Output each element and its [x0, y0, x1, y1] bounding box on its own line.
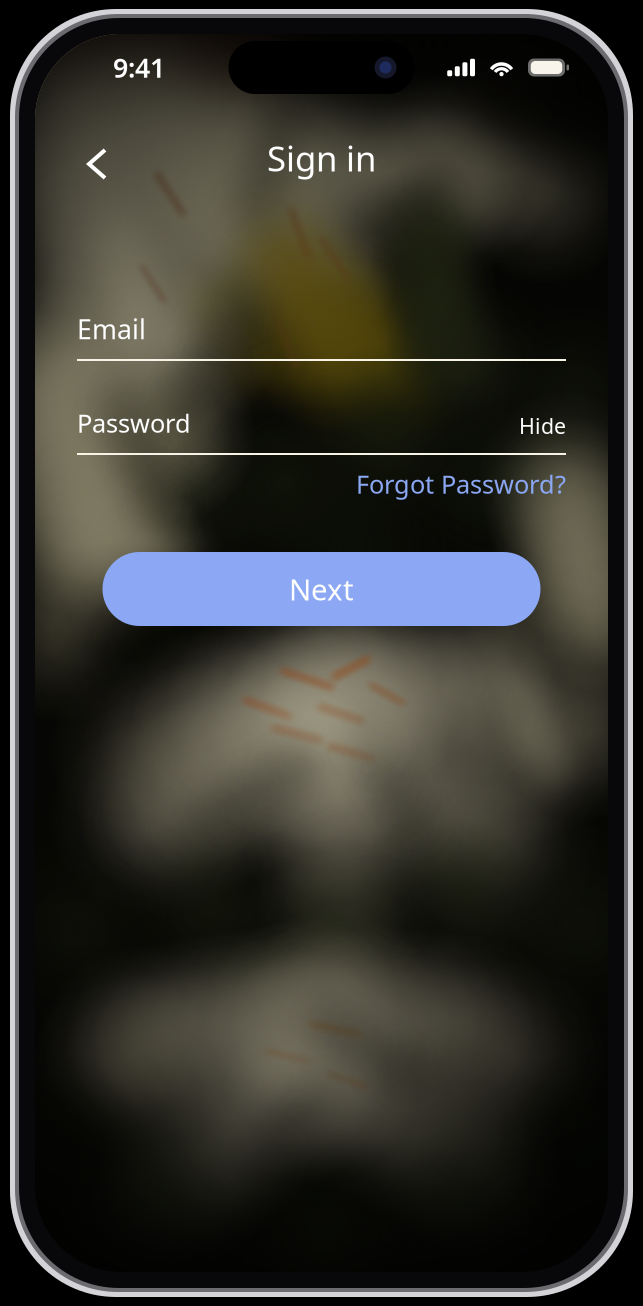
button[interactable]: Forgot Password? — [356, 468, 566, 500]
staticText: Forgot Password? — [356, 467, 566, 501]
staticText: Password — [77, 406, 191, 440]
button[interactable]: Next — [102, 552, 540, 626]
staticText: Email — [77, 311, 146, 347]
staticText: Hide — [519, 411, 566, 440]
button[interactable]: Back — [73, 142, 117, 186]
staticText: Next — [289, 569, 354, 608]
staticText: Sign in — [267, 135, 376, 181]
button[interactable]: Hide — [519, 411, 566, 440]
staticText: 9:41 — [113, 50, 165, 85]
